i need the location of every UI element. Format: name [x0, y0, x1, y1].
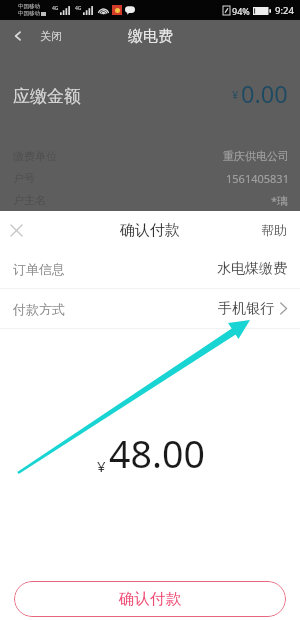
staticText: ¥ [232, 87, 239, 102]
button[interactable]: 帮助 [248, 214, 300, 246]
button[interactable]: 订单信息 [0, 249, 300, 288]
staticText: 水电煤缴费 [217, 260, 287, 278]
button[interactable]: Close [0, 29, 70, 43]
staticText: 确认付款 [119, 589, 181, 609]
staticText: 手机银行 [218, 300, 274, 318]
staticText: 重庆供电公司 [223, 149, 289, 163]
button[interactable]: 确认付款 [14, 581, 286, 617]
button[interactable]: 付款方式 [0, 289, 300, 328]
staticText: 确认付款 [120, 221, 180, 240]
staticText: 应缴金额 [13, 86, 81, 107]
staticText: *璃 [271, 193, 289, 208]
staticText: 1561405831 [226, 171, 289, 186]
staticText: 缴电费 [128, 27, 173, 46]
staticText: 48.00 [109, 428, 205, 479]
staticText: 缴费单位 [13, 149, 57, 163]
staticText: 0.00 [241, 78, 288, 104]
staticText: 户号 [13, 171, 35, 185]
staticText: 帮助 [261, 222, 287, 238]
staticText: 中国移动 [18, 10, 40, 17]
staticText: 4G [75, 5, 82, 12]
staticText: 付款方式 [13, 301, 65, 317]
staticText: 户主名 [13, 193, 46, 207]
staticText: 关闭 [40, 29, 62, 43]
staticText: 9:24 [275, 4, 294, 17]
staticText: 94% [232, 5, 250, 17]
staticText: ¥ [97, 456, 106, 476]
staticText: 订单信息 [13, 261, 65, 277]
button[interactable]: Close [0, 214, 32, 246]
staticText: 4G [52, 5, 59, 12]
staticText: 中国移动 [18, 3, 40, 10]
